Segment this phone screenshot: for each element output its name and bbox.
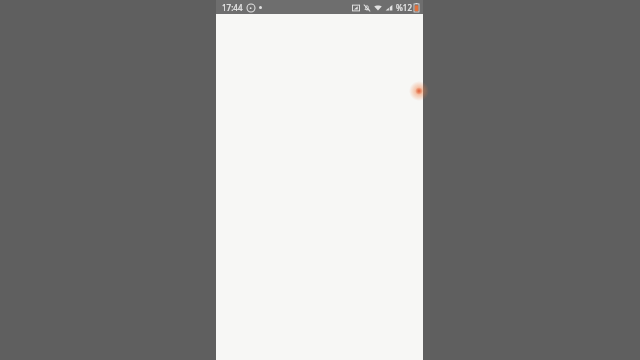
other: Touch ripple	[409, 81, 429, 101]
staticText: %12	[396, 2, 412, 13]
button[interactable]: Touch ripple	[216, 14, 423, 360]
staticText: 17:44	[222, 2, 243, 13]
